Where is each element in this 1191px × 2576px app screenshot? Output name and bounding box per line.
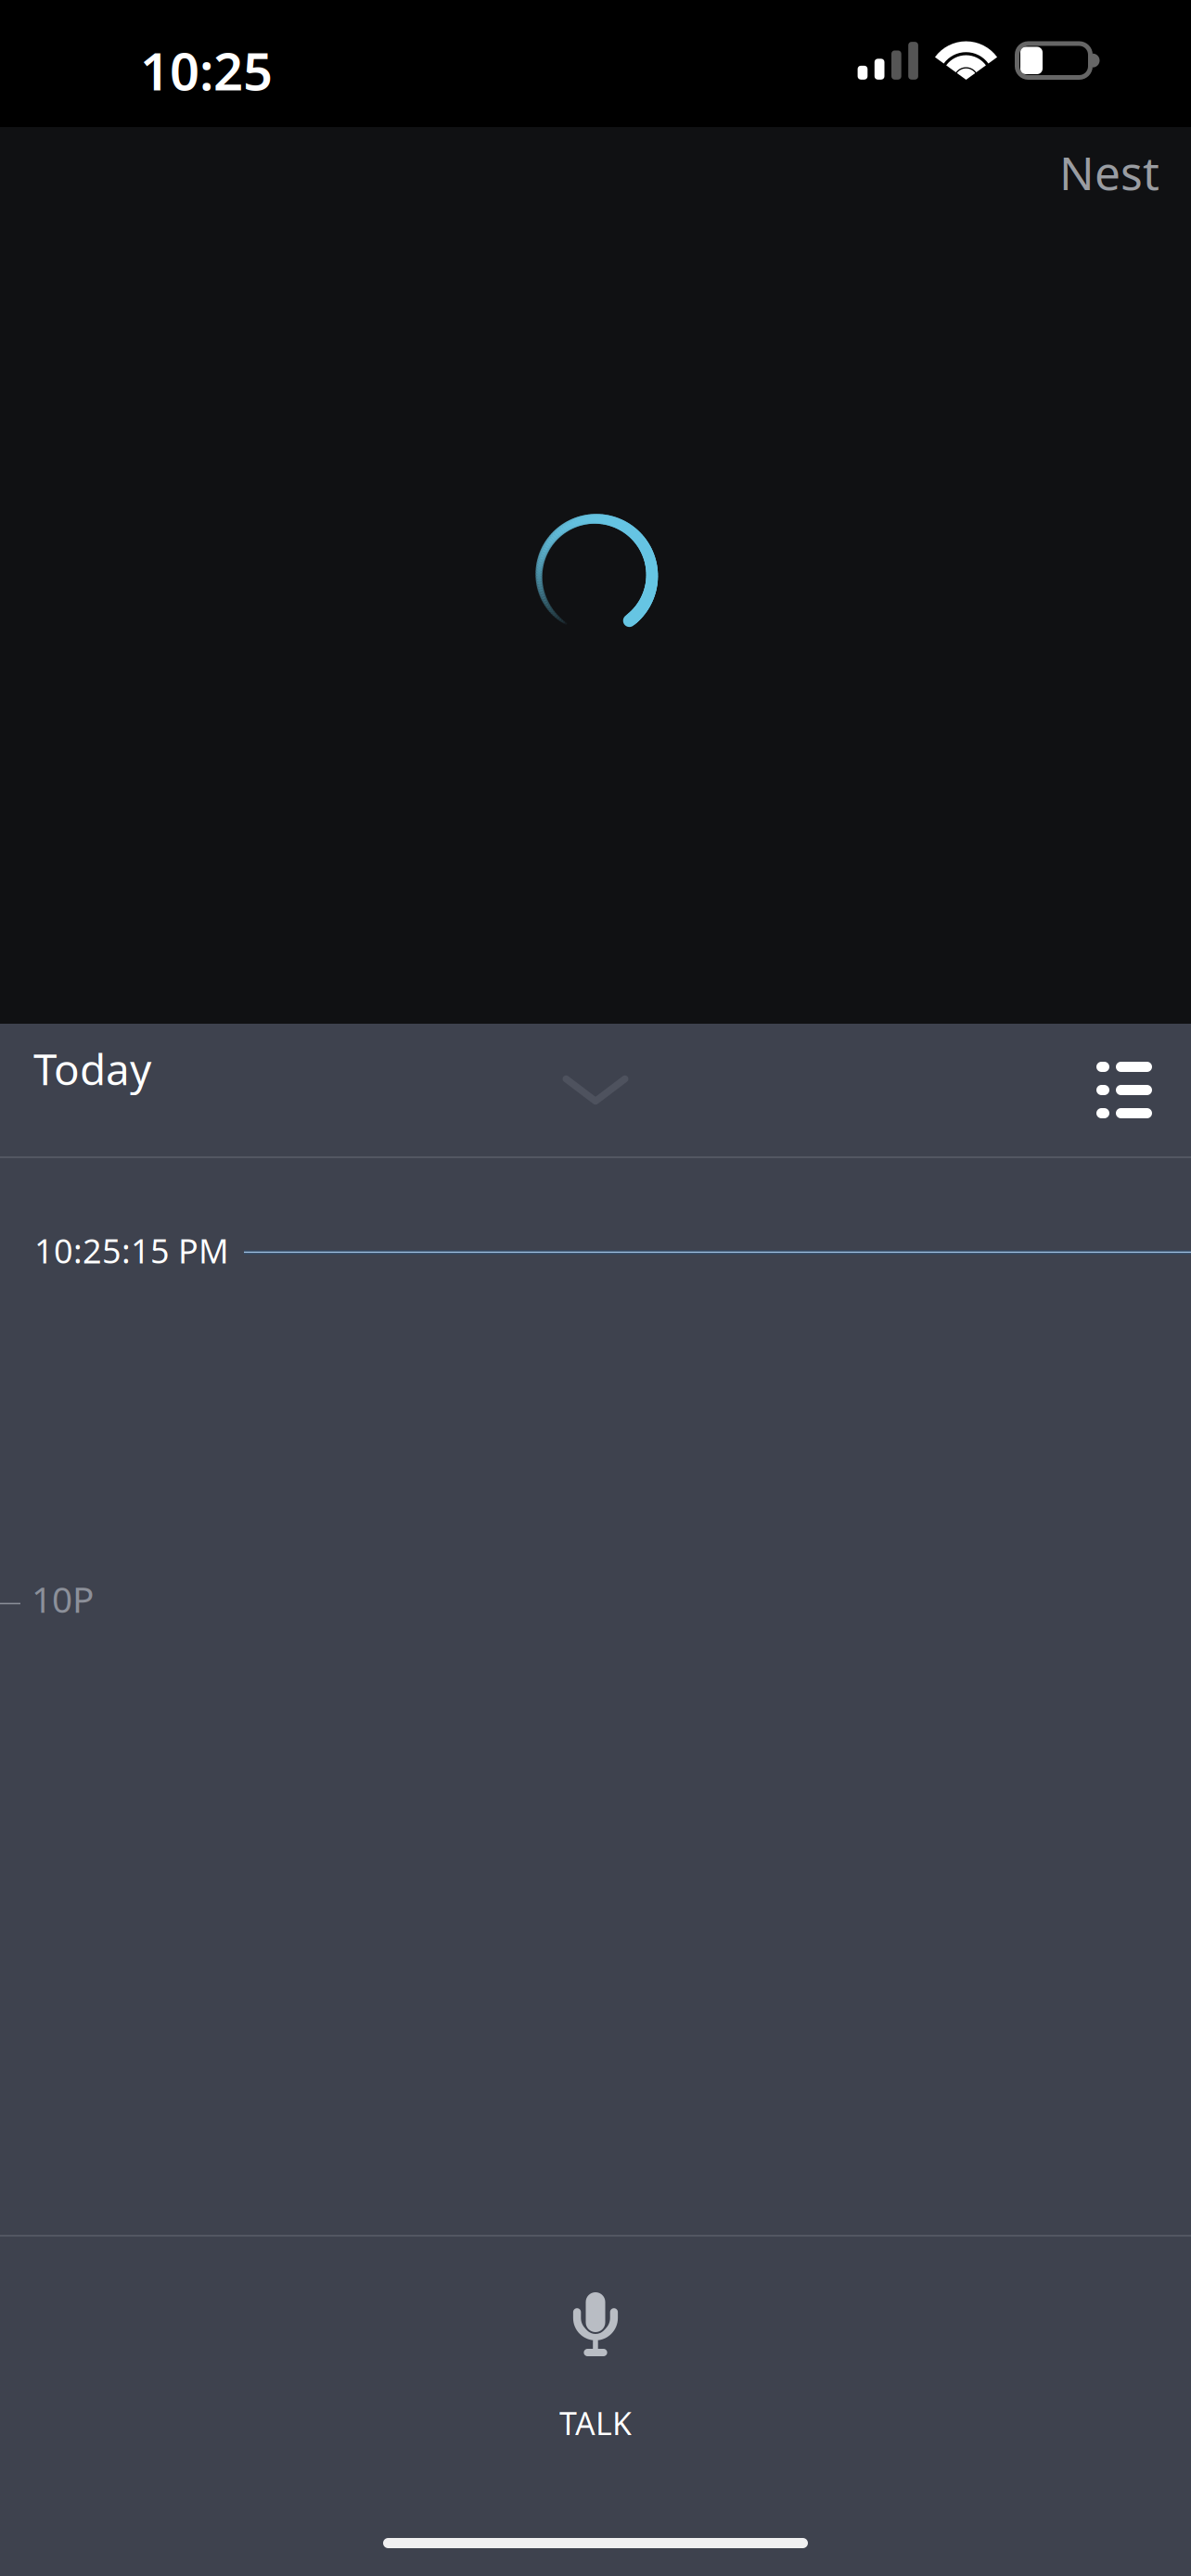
button[interactable]: Choose day <box>563 1075 628 1105</box>
button[interactable]: Today <box>0 1024 1191 1156</box>
staticText: 10P <box>32 1575 94 1623</box>
staticText: TALK <box>559 2402 632 2445</box>
staticText: Today <box>33 1040 151 1098</box>
staticText: Nest <box>1059 141 1159 204</box>
button[interactable]: TALK <box>456 2237 735 2467</box>
staticText: 10:25 <box>140 35 273 106</box>
staticText: 10:25:15 PM <box>34 1228 229 1273</box>
button[interactable]: Event list <box>1080 1046 1169 1134</box>
